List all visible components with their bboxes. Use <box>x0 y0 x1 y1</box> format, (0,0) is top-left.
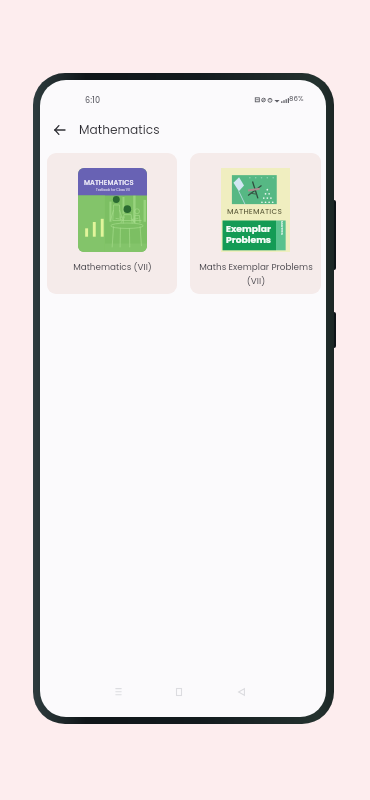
staticText: MATHEMATICS <box>227 206 283 216</box>
button[interactable]: Back <box>231 682 251 702</box>
staticText: MATHS <box>279 221 285 235</box>
button[interactable]: Back <box>48 119 70 141</box>
staticText: Mathematics (VII) <box>73 261 152 273</box>
button[interactable]: MATHEMATICS <box>47 153 177 294</box>
button[interactable]: Home <box>169 682 189 702</box>
staticText: 6:10 <box>85 95 101 106</box>
staticText: Mathematics <box>79 121 160 138</box>
staticText: MATHEMATICS <box>84 178 134 188</box>
staticText: 86% <box>289 94 304 104</box>
staticText: Textbook for Class VII <box>96 188 130 192</box>
staticText: Maths Exemplar Problems (VII) <box>199 261 313 287</box>
button[interactable]: Recent apps <box>108 682 128 702</box>
button[interactable]: MATHEMATICS <box>190 153 321 294</box>
staticText: Problems <box>226 233 271 246</box>
staticText: Exemplar <box>226 222 271 235</box>
